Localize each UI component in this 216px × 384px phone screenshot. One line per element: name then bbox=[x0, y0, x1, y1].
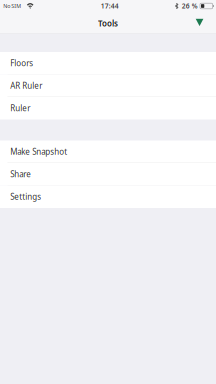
staticText: No SIM bbox=[3, 2, 21, 10]
button[interactable]: Floors bbox=[0, 52, 216, 74]
staticText: Settings bbox=[10, 191, 41, 202]
staticText: AR Ruler bbox=[10, 80, 42, 91]
button[interactable]: Collapse bbox=[190, 13, 216, 34]
staticText: 26 % bbox=[182, 2, 198, 10]
button[interactable]: Share bbox=[0, 163, 216, 185]
staticText: Floors bbox=[10, 58, 33, 68]
button[interactable]: Settings bbox=[0, 185, 216, 208]
button[interactable]: AR Ruler bbox=[0, 74, 216, 97]
staticText: Share bbox=[10, 169, 31, 179]
staticText: 17:44 bbox=[101, 1, 119, 10]
button[interactable]: Make Snapshot bbox=[0, 140, 216, 163]
staticText: Ruler bbox=[10, 103, 30, 113]
button[interactable]: Ruler bbox=[0, 97, 216, 119]
staticText: Make Snapshot bbox=[10, 146, 67, 157]
staticText: Tools bbox=[98, 18, 118, 29]
